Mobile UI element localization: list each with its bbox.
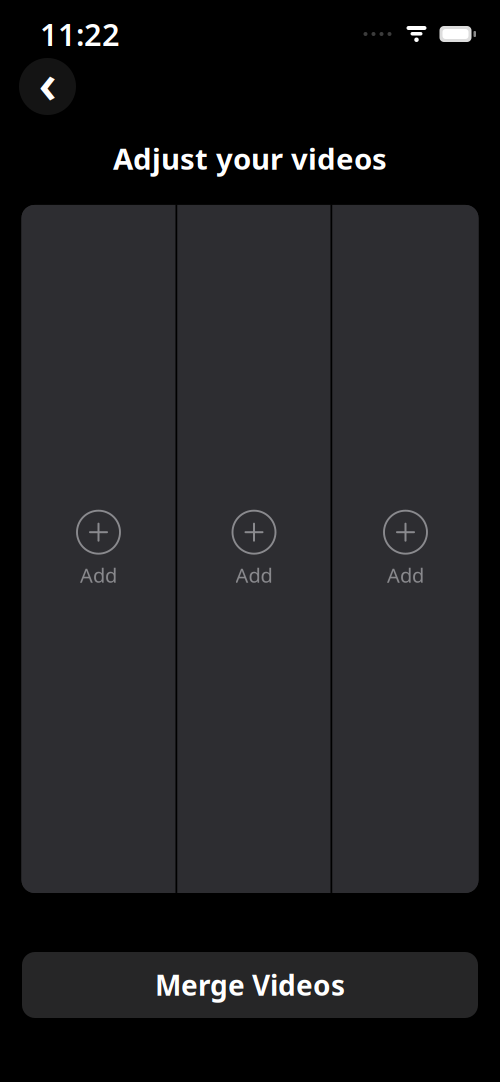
button[interactable]: Add video — [332, 205, 478, 893]
staticText: Add — [235, 562, 272, 588]
staticText: Merge Videos — [155, 966, 345, 1004]
staticText: Adjust your videos — [113, 139, 387, 178]
button[interactable]: Add video — [177, 205, 330, 893]
staticText: Add — [80, 562, 117, 588]
staticText: ‹ — [38, 47, 56, 118]
button[interactable]: Merge Videos — [22, 952, 478, 1018]
button[interactable]: Back — [19, 58, 76, 115]
staticText: Add — [387, 562, 424, 588]
button[interactable]: Add video — [21, 205, 175, 893]
staticText: 11:22 — [40, 14, 120, 54]
